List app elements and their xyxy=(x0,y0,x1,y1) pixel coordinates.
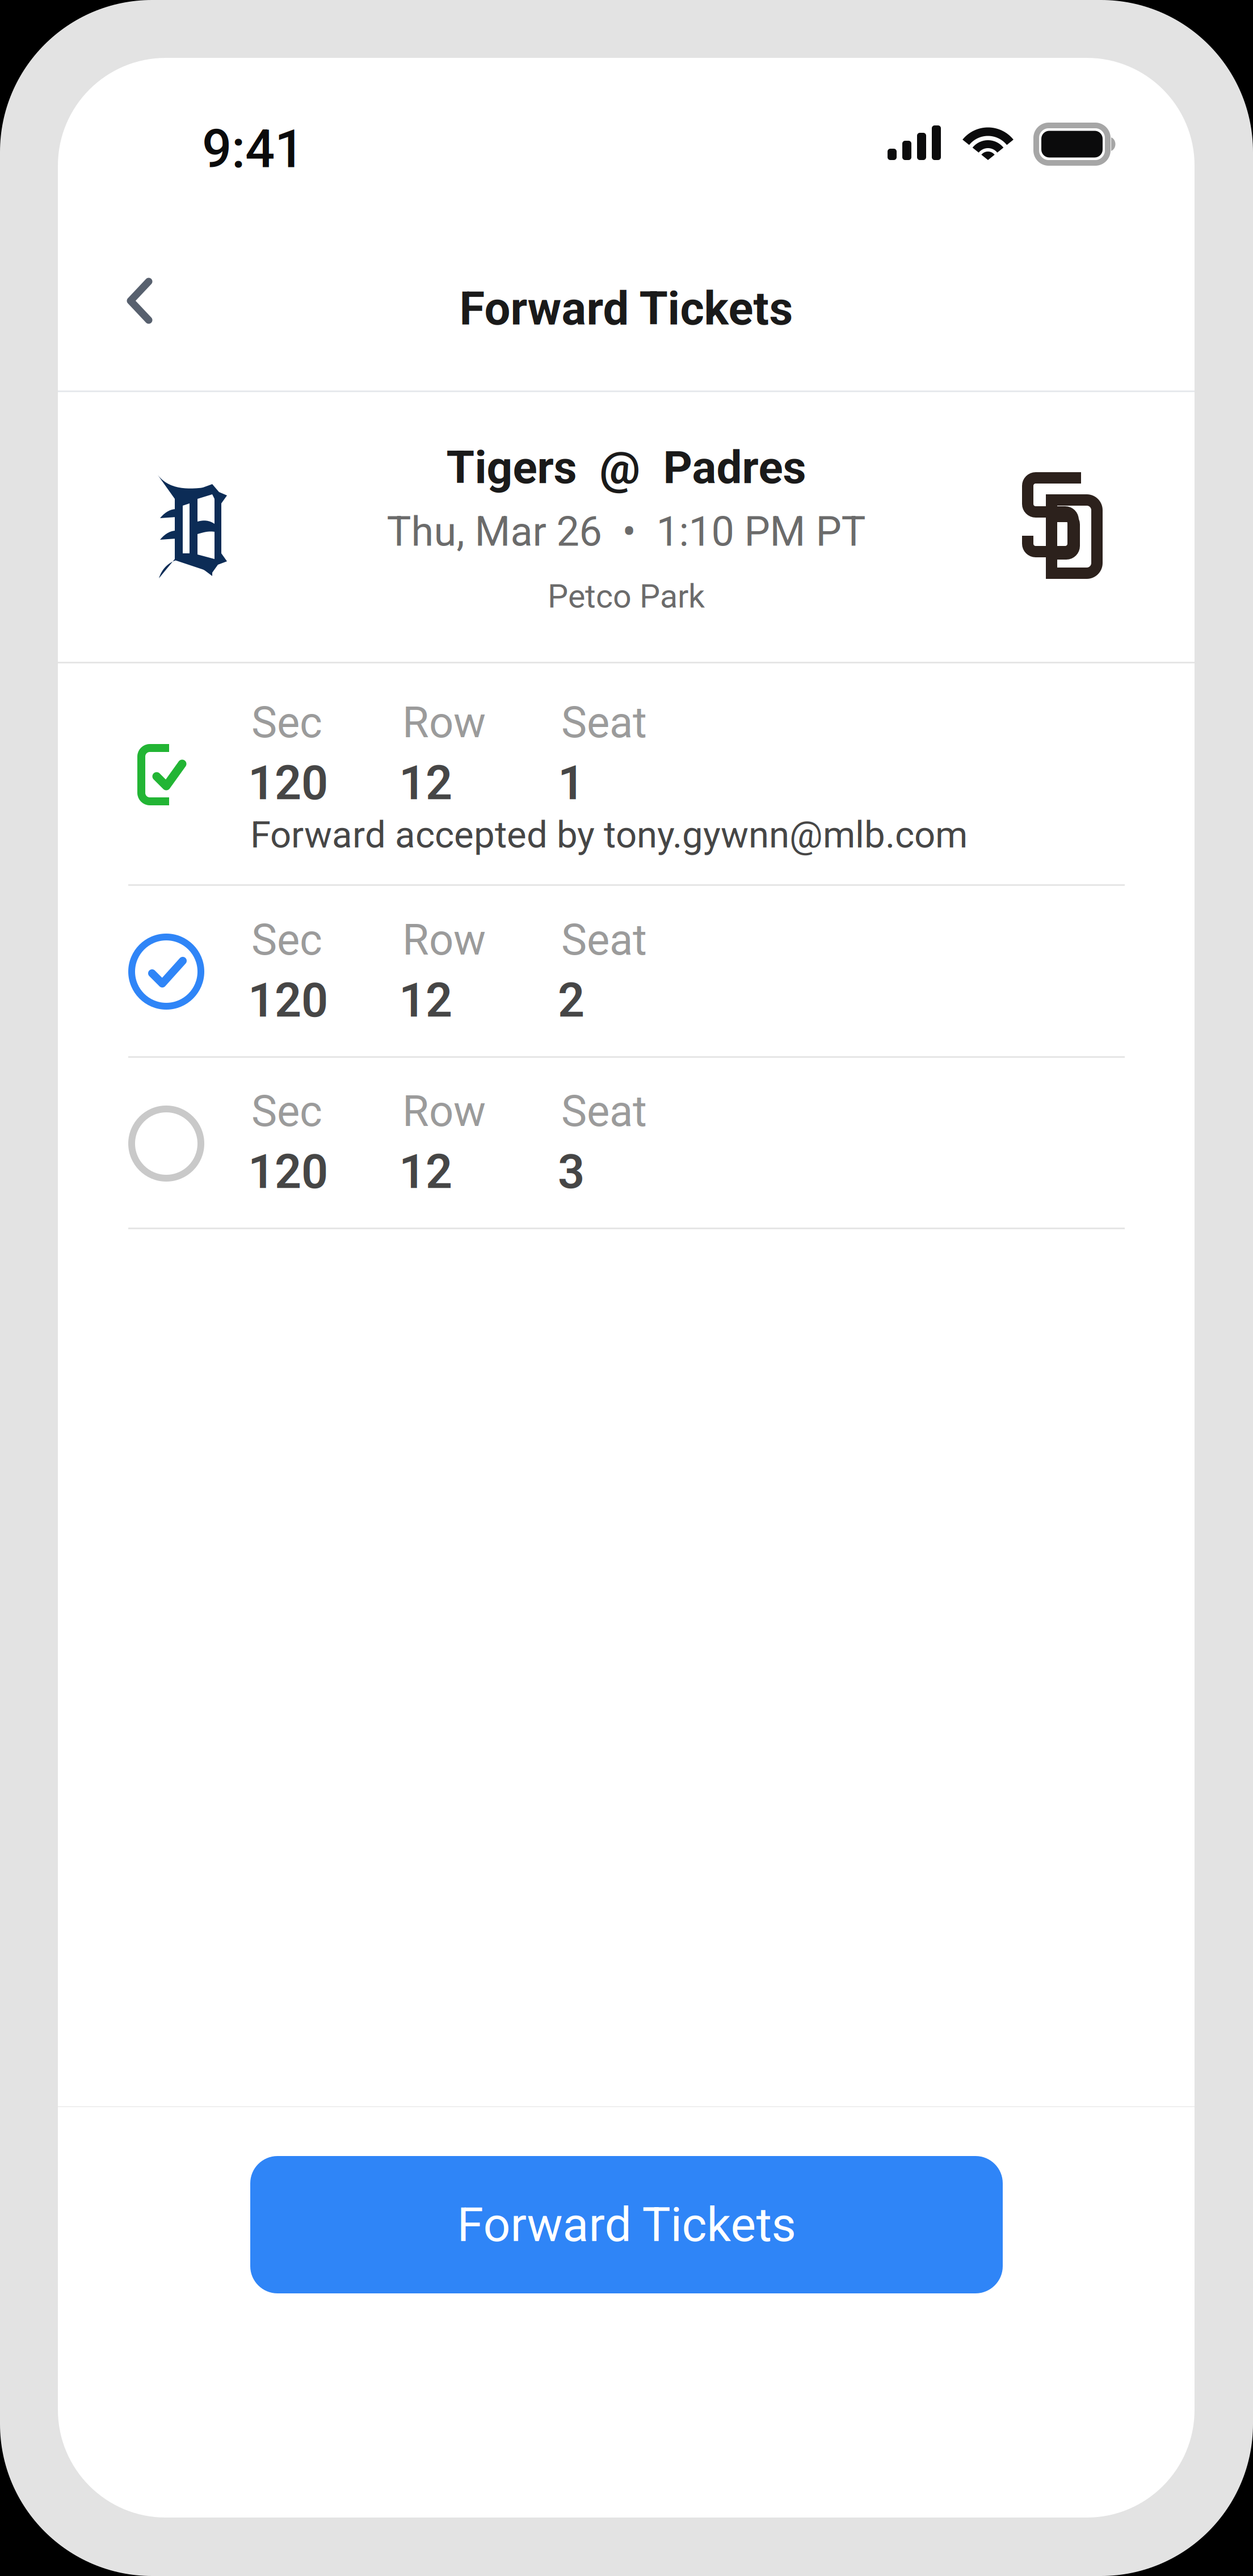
staticText: Sec xyxy=(251,1086,322,1137)
staticText: Sec xyxy=(251,915,322,965)
staticText: Thu, Mar 26 • 1:10 PM PT xyxy=(387,508,866,556)
button[interactable]: Back xyxy=(96,267,182,335)
staticText: 12 xyxy=(399,1144,452,1199)
staticText: 12 xyxy=(399,756,452,811)
staticText: Forward Tickets xyxy=(459,282,793,336)
button[interactable]: Sec xyxy=(58,1058,1195,1229)
staticText: Seat xyxy=(561,915,647,965)
staticText: Petco Park xyxy=(548,577,705,616)
staticText: 2 xyxy=(558,973,585,1028)
staticText: Sec xyxy=(251,697,322,748)
staticText: 3 xyxy=(558,1144,585,1199)
staticText: 120 xyxy=(248,1144,328,1199)
staticText: Seat xyxy=(561,1086,647,1137)
staticText: 120 xyxy=(248,973,328,1028)
staticText: 1 xyxy=(558,756,585,811)
button[interactable]: Forward Tickets xyxy=(250,2156,1003,2293)
staticText: Forward accepted by tony.gywnn@mlb.com xyxy=(250,813,968,857)
staticText: Row xyxy=(402,697,486,748)
staticText: 9:41 xyxy=(202,119,304,180)
staticText: 120 xyxy=(248,756,328,811)
staticText: Seat xyxy=(561,697,647,748)
button[interactable]: Sec xyxy=(58,663,1195,885)
staticText: Row xyxy=(402,1086,486,1137)
staticText: Tigers @ Padres xyxy=(446,441,806,494)
staticText: 12 xyxy=(399,973,452,1028)
staticText: Forward Tickets xyxy=(457,2197,796,2253)
staticText: Row xyxy=(402,915,486,965)
button[interactable]: Sec xyxy=(58,886,1195,1057)
